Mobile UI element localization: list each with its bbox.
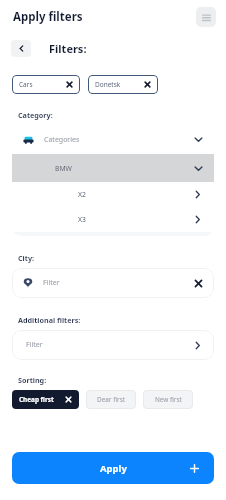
staticText: BMW	[55, 164, 72, 173]
staticText: Sorting:	[18, 375, 47, 385]
staticText: Category:	[18, 110, 53, 120]
staticText: Filter	[43, 278, 60, 288]
button[interactable]: Dear first	[86, 390, 136, 409]
staticText: Apply filters	[13, 9, 83, 25]
staticText: X2	[78, 190, 86, 199]
button[interactable]: Cars	[12, 75, 80, 94]
button[interactable]: BMW	[12, 154, 214, 182]
button[interactable]: X3	[12, 207, 214, 232]
button[interactable]: Cheap first	[12, 390, 79, 409]
button[interactable]: Menu	[196, 7, 216, 27]
button[interactable]: New first	[143, 390, 193, 409]
staticText: Dear first	[97, 395, 126, 404]
staticText: New first	[155, 395, 182, 404]
button[interactable]: X2	[12, 182, 214, 207]
staticText: Apply	[100, 462, 127, 475]
staticText: Cars	[19, 80, 33, 89]
staticText: City:	[18, 253, 35, 263]
staticText: Filter	[26, 340, 43, 350]
staticText: Cheap first	[19, 395, 54, 404]
button[interactable]: Filter	[12, 268, 214, 298]
staticText: Donetsk	[95, 80, 121, 89]
button[interactable]: Donetsk	[88, 75, 158, 94]
staticText: Categories	[44, 135, 80, 145]
button[interactable]: Apply	[12, 452, 214, 484]
button[interactable]: Filter	[12, 330, 214, 360]
staticText: X3	[78, 215, 86, 224]
staticText: Additional filters:	[18, 315, 81, 325]
button[interactable]: Back	[11, 40, 31, 57]
staticText: Filters:	[49, 41, 87, 56]
button[interactable]: Categories	[12, 125, 214, 154]
